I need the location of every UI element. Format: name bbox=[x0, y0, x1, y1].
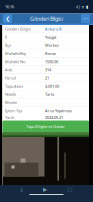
button[interactable]: Mevkii bbox=[2, 98, 89, 107]
staticText: Gönderi Bilgisi bbox=[30, 15, 63, 22]
staticText: 21 bbox=[45, 75, 49, 81]
button[interactable]: Tarih bbox=[2, 114, 89, 122]
button[interactable]: Mahalle No bbox=[2, 58, 89, 66]
staticText: 2024-05-21 bbox=[45, 115, 63, 120]
staticText: Arsa Yapılması bbox=[45, 108, 72, 113]
button[interactable]: İl bbox=[2, 33, 89, 41]
staticText: Tapu Alanı bbox=[5, 83, 23, 89]
button[interactable]: Nitelik bbox=[2, 90, 89, 99]
button[interactable]: İlçe bbox=[2, 41, 89, 49]
staticText: Ankara İli bbox=[45, 26, 62, 32]
staticText: ⬚ bbox=[67, 186, 72, 193]
button[interactable]: İşlem Tipi bbox=[2, 107, 89, 115]
staticText: Mahalle No bbox=[5, 59, 25, 64]
staticText: Merkez bbox=[45, 43, 59, 48]
staticText: Ada bbox=[5, 67, 12, 72]
staticText: ıl| ᯤ ▮ bbox=[76, 4, 88, 9]
button[interactable]: Tapu Bilgilerini Göster bbox=[2, 120, 89, 132]
staticText: 1500.00 bbox=[45, 59, 58, 64]
button[interactable]: Gönderi Bilgisi bbox=[2, 25, 89, 33]
button[interactable]: Mahalle/Köy bbox=[2, 49, 89, 58]
staticText: 314 bbox=[45, 67, 51, 72]
staticText: Tarla bbox=[45, 92, 54, 97]
button[interactable]: Ada bbox=[2, 66, 89, 74]
staticText: Beraz bbox=[45, 51, 56, 56]
staticText: 4.001.00 bbox=[45, 83, 59, 89]
staticText: ▶ bbox=[43, 186, 47, 193]
staticText: Yozgat bbox=[45, 34, 56, 40]
staticText: 16:16 bbox=[5, 4, 14, 9]
staticText: Gönderi Bilgisi bbox=[5, 26, 31, 32]
button[interactable]: Back bbox=[3, 14, 12, 23]
staticText: Parsel bbox=[5, 75, 16, 81]
staticText: ⋯ bbox=[83, 16, 88, 22]
button[interactable]: Parsel bbox=[2, 74, 89, 82]
staticText: Tapu Bilgilerini Göster bbox=[26, 124, 65, 129]
staticText: ❮ bbox=[5, 16, 9, 22]
staticText: Nitelik bbox=[5, 92, 16, 97]
staticText: Mahalle/Köy bbox=[5, 51, 26, 56]
staticText: İl bbox=[5, 34, 7, 40]
staticText: ⤓ bbox=[20, 187, 22, 192]
staticText: İşlem Tipi bbox=[5, 108, 22, 113]
staticText: Tarih bbox=[5, 115, 14, 120]
button[interactable]: More bbox=[81, 14, 90, 23]
button[interactable]: Tapu Alanı bbox=[2, 82, 89, 90]
staticText: İlçe bbox=[5, 43, 11, 48]
staticText: Mevkii bbox=[5, 100, 17, 105]
